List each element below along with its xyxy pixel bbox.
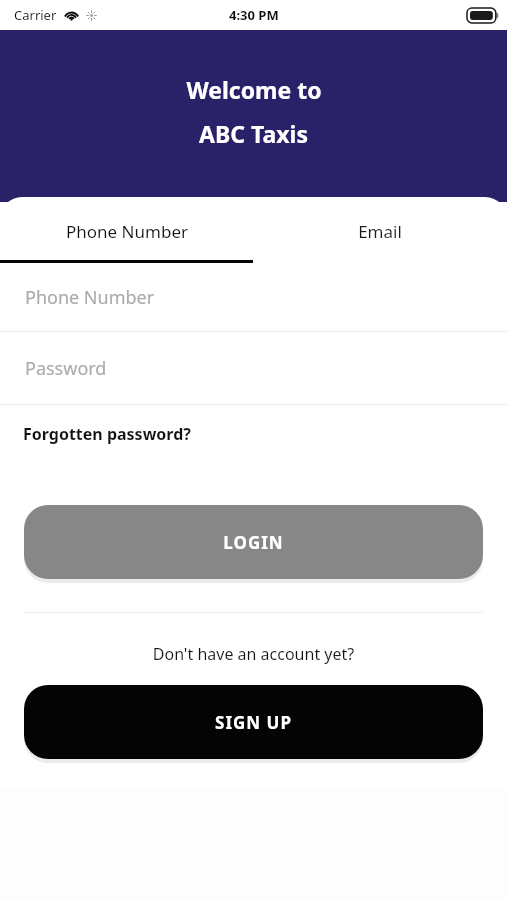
staticText: ABC Taxis bbox=[199, 118, 308, 149]
button[interactable]: Phone Number bbox=[0, 202, 253, 260]
staticText: Email bbox=[358, 220, 402, 243]
staticText: Forgotten password? bbox=[23, 423, 191, 445]
button[interactable]: Email bbox=[253, 202, 507, 260]
staticText: 4:30 PM bbox=[229, 6, 279, 24]
staticText: Don't have an account yet? bbox=[0, 643, 507, 665]
staticText: SIGN UP bbox=[215, 711, 292, 734]
staticText: LOGIN bbox=[223, 531, 284, 554]
button[interactable]: Password bbox=[0, 332, 507, 404]
staticText: Carrier bbox=[14, 6, 57, 24]
staticText: Phone Number bbox=[66, 220, 188, 243]
button[interactable]: Phone Number bbox=[0, 263, 507, 331]
staticText: Phone Number bbox=[25, 285, 155, 310]
button[interactable]: SIGN UP bbox=[24, 685, 483, 759]
staticText: Welcome to bbox=[186, 74, 322, 105]
button[interactable]: LOGIN bbox=[24, 505, 483, 579]
button[interactable]: Forgotten password? bbox=[0, 405, 507, 463]
staticText: Password bbox=[25, 356, 107, 381]
